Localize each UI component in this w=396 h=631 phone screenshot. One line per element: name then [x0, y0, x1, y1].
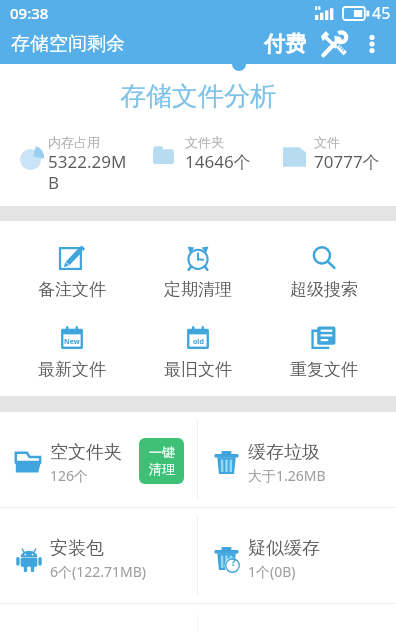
staticText: 缓存垃圾	[248, 441, 320, 464]
staticText: 付费	[264, 31, 306, 57]
button[interactable]: old	[135, 324, 261, 380]
staticText: 126个	[50, 466, 89, 485]
staticText: 最新文件	[38, 359, 106, 380]
staticText: 一键 清理	[149, 444, 175, 478]
button[interactable]: 一键 清理	[139, 438, 184, 484]
staticText: 最旧文件	[164, 359, 232, 380]
staticText: 疑似缓存	[248, 537, 320, 560]
staticText: 重复文件	[290, 359, 358, 380]
staticText: 45	[372, 2, 391, 24]
staticText: old	[193, 337, 204, 347]
staticText: ?	[231, 555, 236, 569]
button[interactable]: 超级搜索	[261, 244, 387, 300]
staticText: 5322.29MB	[48, 150, 132, 194]
button[interactable]: More options	[356, 28, 388, 60]
staticText: 内存占用	[48, 134, 100, 150]
button[interactable]: ?	[198, 508, 396, 603]
staticText: 备注文件	[38, 279, 106, 300]
staticText: 存储空间剩余	[11, 32, 125, 56]
staticText: 14646个	[185, 150, 251, 173]
staticText: 大于1.26MB	[248, 466, 326, 485]
staticText: 文件夹	[185, 134, 224, 150]
staticText: 70777个	[314, 150, 380, 173]
button[interactable]: 定期清理	[135, 244, 261, 300]
staticText: 1个(0B)	[248, 562, 296, 581]
button[interactable]: 空文件夹	[0, 412, 197, 507]
staticText: 空文件夹	[50, 441, 122, 464]
staticText: New	[64, 337, 80, 347]
staticText: 定期清理	[164, 279, 232, 300]
staticText: 6个(122.71MB)	[50, 562, 146, 581]
button[interactable]: 付费	[260, 27, 310, 61]
button[interactable]: 缓存垃圾	[198, 412, 396, 507]
staticText: 存储文件分析	[0, 80, 396, 113]
button[interactable]: 安装包	[0, 508, 197, 603]
staticText: 安装包	[50, 537, 104, 560]
button[interactable]: 备注文件	[9, 244, 135, 300]
staticText: 超级搜索	[290, 279, 358, 300]
button[interactable]: 重复文件	[261, 324, 387, 380]
button[interactable]: New	[9, 324, 135, 380]
button[interactable]: Tools	[316, 26, 352, 62]
staticText: 文件	[314, 134, 340, 150]
staticText: 09:38	[10, 3, 49, 23]
